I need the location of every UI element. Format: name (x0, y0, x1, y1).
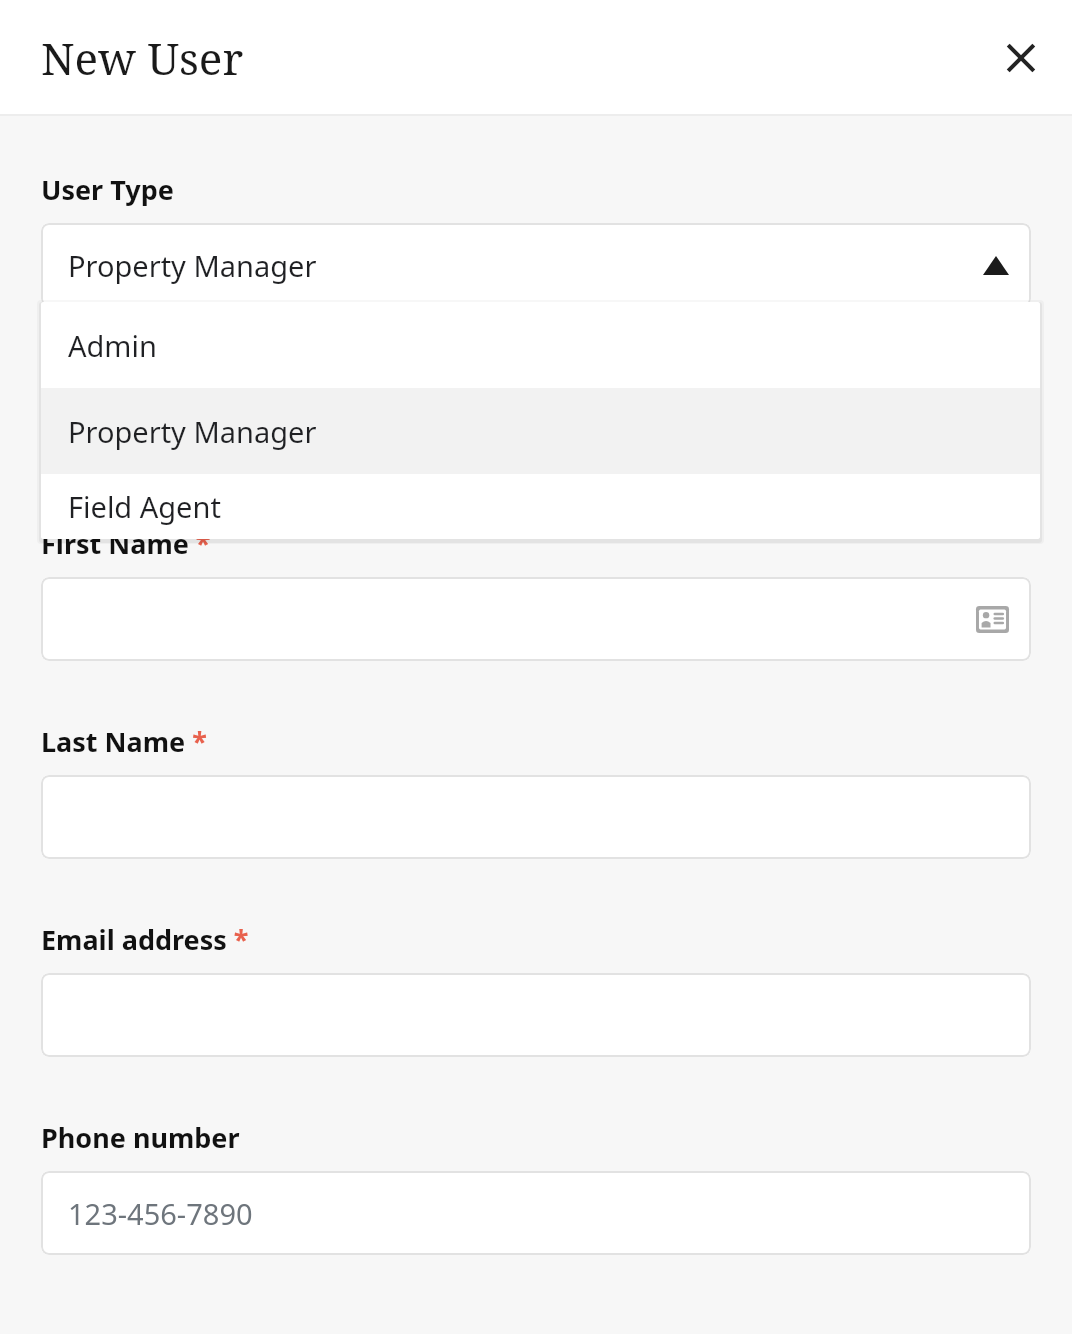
button[interactable]: 123-456-7890 (41, 1171, 1031, 1255)
staticText: Email address * (41, 921, 249, 958)
staticText: Property Manager (68, 246, 317, 285)
staticText: First Name * (41, 525, 211, 562)
staticText: 123-456-7890 (68, 1194, 253, 1233)
staticText: Admin (68, 326, 157, 365)
button[interactable]: Property Manager (41, 223, 1031, 307)
button[interactable]: Choose contact (975, 602, 1009, 636)
staticText: User Type (41, 171, 174, 208)
button[interactable]: Admin (41, 302, 1040, 388)
button[interactable]: Choose contact (41, 577, 1031, 661)
staticText: Property Manager (68, 412, 317, 451)
staticText: New User (41, 28, 244, 88)
staticText: Phone number (41, 1119, 240, 1156)
button[interactable]: Property Manager (41, 388, 1040, 474)
button[interactable]: Close (988, 25, 1054, 91)
staticText: Field Agent (68, 487, 221, 526)
staticText: Last Name * (41, 723, 207, 760)
button[interactable] (41, 775, 1031, 859)
button[interactable] (41, 973, 1031, 1057)
button[interactable]: Field Agent (41, 474, 1040, 539)
